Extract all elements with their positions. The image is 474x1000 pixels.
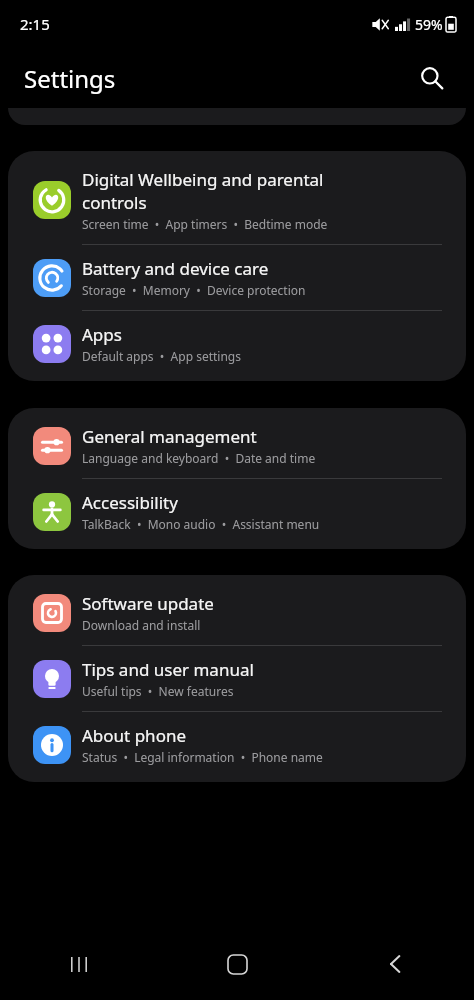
- staticText: Status • Legal information • Phone name: [82, 749, 323, 765]
- button[interactable]: General management: [8, 413, 466, 478]
- staticText: Screen time • App timers • Bedtime mode: [82, 216, 328, 232]
- staticText: Battery and device care: [82, 257, 269, 280]
- button[interactable]: Back: [316, 928, 474, 1000]
- staticText: 2:15: [20, 14, 50, 34]
- button[interactable]: Search: [410, 56, 454, 100]
- staticText: Language and keyboard • Date and time: [82, 450, 316, 466]
- staticText: Accessibility: [82, 491, 178, 514]
- button[interactable]: Digital Wellbeing and parental controls: [8, 156, 466, 244]
- button[interactable]: About phone: [8, 712, 466, 777]
- button[interactable]: Home: [158, 928, 316, 1000]
- staticText: 59%: [415, 15, 443, 34]
- button[interactable]: [8, 108, 466, 125]
- button[interactable]: Battery and device care: [8, 245, 466, 310]
- button[interactable]: Accessibility: [8, 479, 466, 544]
- button[interactable]: Tips and user manual: [8, 646, 466, 711]
- button[interactable]: Software update: [8, 580, 466, 645]
- staticText: Apps: [82, 323, 122, 346]
- button[interactable]: Apps: [8, 311, 466, 376]
- staticText: Software update: [82, 592, 214, 615]
- staticText: Digital Wellbeing and parental controls: [82, 168, 324, 214]
- button[interactable]: Recents: [0, 928, 158, 1000]
- staticText: General management: [82, 425, 257, 448]
- staticText: TalkBack • Mono audio • Assistant menu: [82, 516, 320, 532]
- staticText: Default apps • App settings: [82, 348, 241, 364]
- staticText: Tips and user manual: [82, 658, 254, 681]
- staticText: Storage • Memory • Device protection: [82, 282, 306, 298]
- staticText: Download and install: [82, 617, 201, 633]
- staticText: Settings: [24, 62, 116, 95]
- staticText: About phone: [82, 724, 187, 747]
- staticText: Useful tips • New features: [82, 683, 234, 699]
